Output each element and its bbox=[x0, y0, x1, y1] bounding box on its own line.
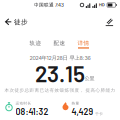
staticText: 23.15 bbox=[35, 59, 85, 87]
button[interactable]: 配速 bbox=[53, 39, 65, 49]
staticText: 本次徒步总距离已达有效锻炼强度， 提高心肺能力 bbox=[4, 87, 115, 93]
staticText: HD bbox=[99, 3, 105, 7]
button[interactable]: 轨迹 bbox=[29, 39, 41, 49]
staticText: 详情 bbox=[77, 39, 89, 47]
staticText: 千卡 bbox=[95, 111, 103, 116]
staticText: 2024年12月28日 早上8:36 bbox=[29, 54, 90, 61]
button[interactable]: 详情 bbox=[77, 39, 89, 49]
button[interactable]: 返回 bbox=[0, 18, 14, 25]
staticText: 轨迹 bbox=[29, 39, 41, 47]
staticText: 中国联通 7:43 bbox=[34, 2, 64, 8]
staticText: 徒步 bbox=[14, 18, 28, 26]
staticText: 公里 bbox=[84, 75, 94, 81]
staticText: 08:41:32 bbox=[15, 106, 48, 117]
staticText: 热量 bbox=[71, 101, 79, 105]
button[interactable]: 编辑 bbox=[105, 18, 120, 26]
staticText: 4,429 bbox=[71, 106, 93, 117]
staticText: 配速 bbox=[53, 39, 65, 47]
staticText: 运动时长 bbox=[15, 101, 31, 105]
